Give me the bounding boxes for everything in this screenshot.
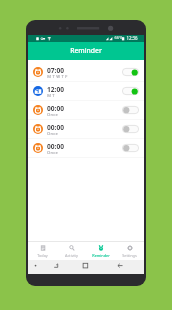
staticText: M T <box>47 93 55 99</box>
button[interactable]: 00:00 <box>28 101 144 120</box>
button[interactable]: 00:00 <box>28 120 144 139</box>
staticText: 66% <box>114 35 123 41</box>
staticText: Once <box>47 112 58 118</box>
staticText: Once <box>47 131 58 137</box>
button[interactable]: Alarm enabled <box>122 87 139 95</box>
staticText: 12:00 <box>47 85 64 94</box>
staticText: Reminder <box>70 46 102 55</box>
button[interactable]: Today <box>28 242 57 260</box>
button[interactable]: Reminder <box>86 242 115 260</box>
staticText: Today <box>37 253 48 258</box>
button[interactable]: 12:00 <box>28 82 144 101</box>
button[interactable]: Alarm disabled <box>122 144 139 152</box>
staticText: 00:00 <box>47 142 64 151</box>
staticText: M T W T F <box>47 74 68 80</box>
staticText: Settings <box>122 253 137 258</box>
staticText: 00:00 <box>47 104 64 113</box>
button[interactable]: Activity <box>57 242 86 260</box>
button[interactable]: 07:00 <box>28 63 144 82</box>
staticText: 07:00 <box>47 66 64 75</box>
button[interactable]: Alarm disabled <box>122 125 139 133</box>
button[interactable]: 00:00 <box>28 139 144 158</box>
staticText: 00:00 <box>47 123 64 132</box>
staticText: 12:36 <box>126 35 138 41</box>
button[interactable]: Alarm enabled <box>122 68 139 76</box>
button[interactable]: Reminder <box>28 42 144 60</box>
other: System navigation bar <box>28 260 144 274</box>
staticText: Once <box>47 150 58 156</box>
button[interactable]: Settings <box>115 242 144 260</box>
staticText: Activity <box>65 253 78 258</box>
button[interactable]: Alarm disabled <box>122 106 139 114</box>
staticText: Reminder <box>92 253 110 258</box>
